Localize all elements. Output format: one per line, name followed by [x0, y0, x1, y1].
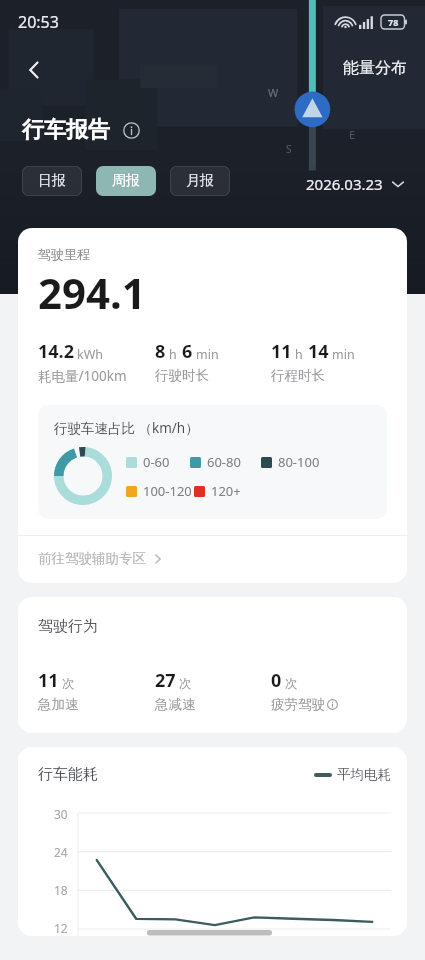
button[interactable]: Back — [12, 48, 56, 92]
staticText: 27 — [155, 668, 176, 693]
staticText: 周报 — [112, 172, 140, 190]
staticText: 78 — [388, 16, 399, 28]
staticText: 行车报告 — [22, 116, 110, 144]
button[interactable]: 月报 — [170, 166, 230, 196]
staticText: 行驶时长 — [155, 367, 209, 384]
staticText: 急加速 — [38, 696, 79, 713]
staticText: 疲劳驾驶 — [271, 696, 325, 713]
staticText: 行驶车速占比 （km/h） — [54, 419, 199, 437]
staticText: 11 — [271, 339, 292, 364]
staticText: 14 — [308, 339, 329, 364]
staticText: 60-80 — [207, 453, 241, 471]
staticText: h — [169, 346, 177, 363]
staticText: 0 — [271, 668, 282, 693]
staticText: 驾驶行为 — [38, 617, 98, 636]
staticText: 80-100 — [278, 453, 320, 471]
staticText: S — [286, 142, 292, 156]
staticText: 11 — [38, 668, 59, 693]
staticText: 20:53 — [18, 11, 59, 33]
staticText: 14.2 — [38, 339, 74, 364]
staticText: kWh — [77, 346, 104, 363]
button[interactable]: 2026.03.23 — [302, 170, 409, 198]
staticText: 次 — [179, 676, 192, 692]
button[interactable]: 日报 — [22, 166, 82, 196]
button[interactable]: 前往驾驶辅助专区 — [18, 536, 407, 583]
staticText: 8 — [155, 339, 166, 364]
staticText: 30 — [54, 806, 68, 822]
staticText: 能量分布 — [343, 58, 407, 78]
staticText: 次 — [62, 676, 75, 692]
staticText: W — [268, 85, 279, 100]
staticText: 2026.03.23 — [306, 174, 383, 194]
staticText: 耗电量/100km — [38, 367, 127, 385]
staticText: 100-120 — [143, 482, 192, 500]
staticText: 日报 — [38, 172, 66, 190]
staticText: 120+ — [211, 482, 241, 500]
staticText: 平均电耗 — [337, 766, 391, 783]
button[interactable]: Info — [118, 117, 144, 143]
staticText: 行车能耗 — [38, 765, 98, 784]
staticText: h — [295, 346, 303, 363]
staticText: 次 — [285, 676, 298, 692]
staticText: 前往驾驶辅助专区 — [38, 550, 146, 567]
staticText: 18 — [54, 882, 68, 898]
staticText: min — [332, 346, 355, 363]
staticText: 急减速 — [155, 696, 196, 713]
staticText: 294.1 — [38, 264, 146, 321]
staticText: 驾驶里程 — [38, 246, 90, 262]
staticText: 12 — [54, 920, 68, 936]
button[interactable]: 周报 — [96, 166, 156, 196]
staticText: 0-60 — [143, 453, 170, 471]
staticText: E — [349, 127, 356, 142]
button[interactable]: 能量分布 — [339, 52, 411, 84]
staticText: 6 — [182, 339, 193, 364]
staticText: 24 — [54, 844, 68, 860]
staticText: 行程时长 — [271, 367, 325, 384]
staticText: 月报 — [186, 172, 214, 190]
staticText: min — [196, 346, 219, 363]
